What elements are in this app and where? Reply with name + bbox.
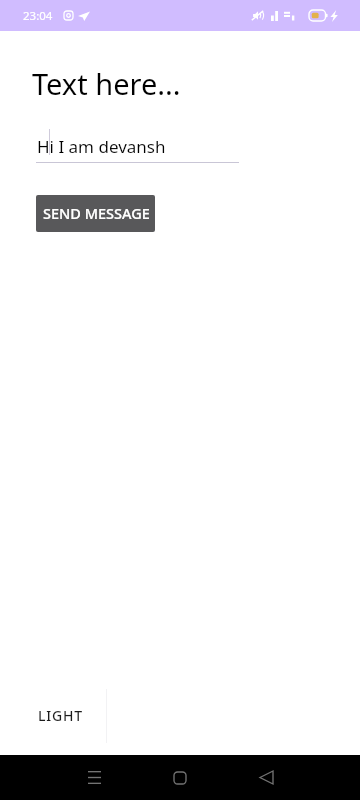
button[interactable]: SEND MESSAGE: [36, 195, 155, 232]
staticText: SEND MESSAGE: [43, 203, 150, 223]
staticText: Hi I am devansh: [37, 135, 166, 158]
staticText: LIGHT: [38, 706, 83, 725]
button[interactable]: Recent apps: [51, 755, 137, 800]
button[interactable]: LIGHT: [0, 689, 106, 743]
button[interactable]: Hi I am devansh: [36, 135, 239, 163]
staticText: 23:04: [23, 8, 53, 24]
button[interactable]: Home: [137, 755, 223, 800]
staticText: Text here...: [32, 64, 181, 103]
button[interactable]: Back: [223, 755, 309, 800]
